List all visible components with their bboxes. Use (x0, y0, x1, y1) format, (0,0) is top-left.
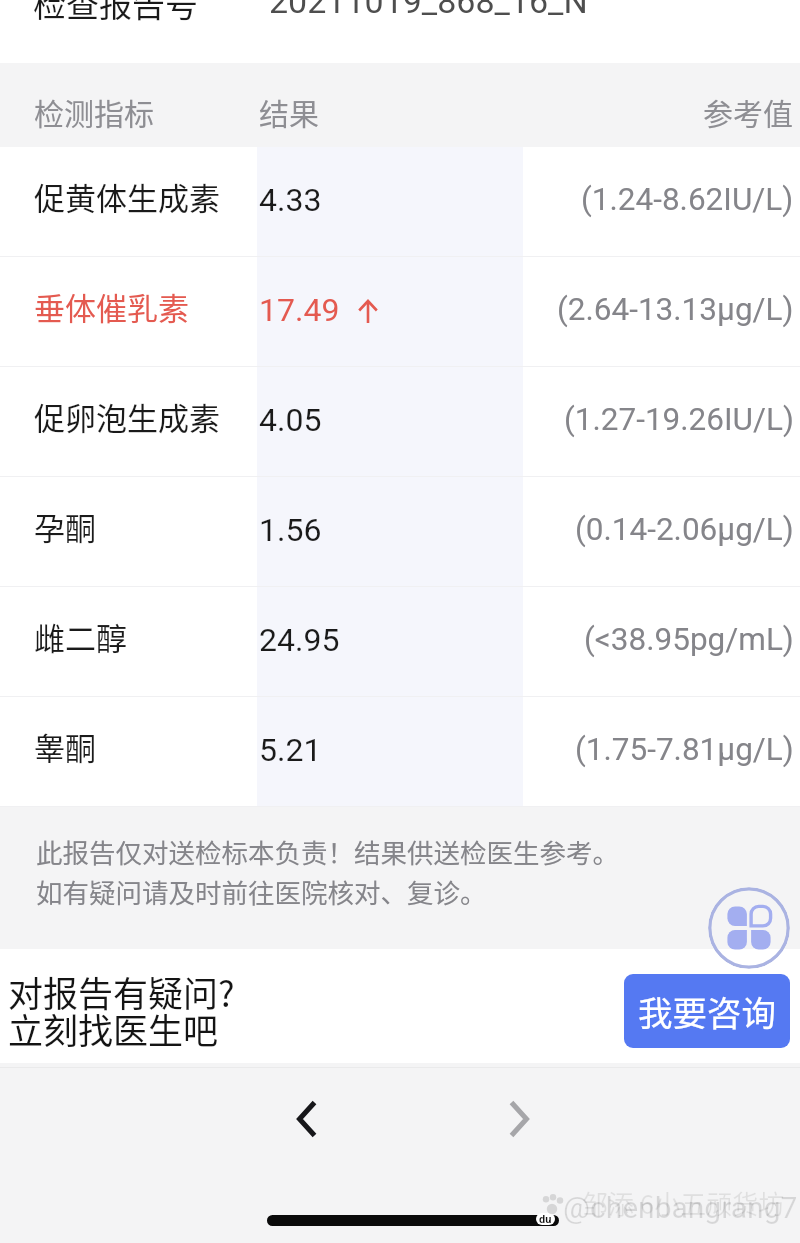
staticText: (0.14-2.06µg/L) (575, 511, 794, 548)
staticText: 促卵泡生成素 (34, 394, 220, 439)
staticText: 结果 (259, 90, 319, 133)
button[interactable]: Back (277, 1089, 337, 1149)
staticText: 睾酮 (34, 724, 96, 769)
staticText: du (539, 1213, 552, 1225)
staticText: 邹添 6小五顽货坊 (582, 1184, 785, 1222)
staticText: 参考值 (703, 90, 793, 133)
staticText: 检测指标 (34, 90, 154, 133)
staticText: 4.33 (259, 181, 322, 219)
staticText: (1.27-19.26IU/L) (564, 401, 794, 438)
staticText: (<38.95pg/mL) (584, 621, 794, 658)
button[interactable]: Forward (489, 1089, 549, 1149)
staticText: 垂体催乳素 (34, 284, 189, 329)
staticText: (1.75-7.81µg/L) (575, 731, 794, 768)
staticText: 我要咨询 (638, 986, 776, 1036)
staticText: @chenbangrang7 (563, 1190, 798, 1225)
staticText: 此报告仅对送检标本负责！结果供送检医生参考。 如有疑问请及时前往医院核对、复诊。 (36, 832, 619, 911)
staticText: (1.24-8.62IU/L) (581, 181, 794, 218)
staticText: 20211019_868_16_N (269, 0, 588, 21)
staticText: (2.64-13.13µg/L) (557, 291, 794, 328)
staticText: 检查报告号 (33, 0, 198, 27)
staticText: 5.21 (259, 731, 322, 769)
staticText: 1.56 (259, 511, 322, 549)
staticText: 17.49 (259, 291, 340, 329)
staticText: 对报告有疑问? 立刻找医生吧 (8, 966, 235, 1054)
staticText: 4.05 (259, 401, 322, 439)
staticText: 雌二醇 (34, 614, 127, 659)
button[interactable]: Assistant (708, 887, 790, 969)
staticText: 孕酮 (34, 504, 96, 549)
staticText: 促黄体生成素 (34, 174, 220, 219)
button[interactable]: 我要咨询 (624, 974, 790, 1048)
staticText: 24.95 (259, 621, 340, 659)
